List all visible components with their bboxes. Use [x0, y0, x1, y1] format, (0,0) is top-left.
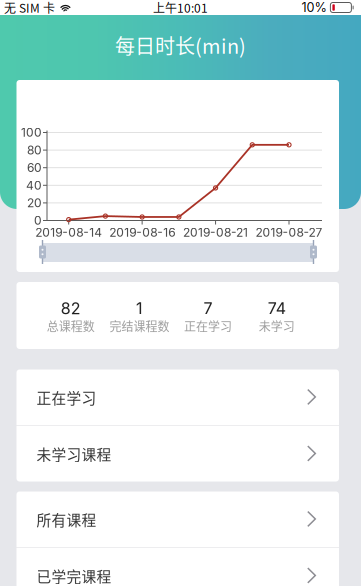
staticText: 正在学习: [36, 387, 96, 408]
staticText: 60: [27, 160, 42, 175]
staticText: 所有课程: [36, 509, 96, 530]
button[interactable]: 已学完课程: [16, 548, 339, 586]
staticText: 7: [204, 299, 213, 318]
staticText: 无 SIM 卡: [4, 0, 55, 16]
staticText: 100: [21, 125, 42, 140]
staticText: 0: [34, 213, 42, 228]
staticText: 2019-08-21: [183, 225, 248, 240]
staticText: 上午10:01: [153, 0, 208, 16]
staticText: 40: [26, 178, 42, 192]
staticText: 未学习: [259, 317, 295, 335]
staticText: 总课程数: [47, 317, 95, 335]
staticText: 74: [268, 299, 286, 318]
staticText: 每日时长(min): [115, 30, 246, 59]
staticText: 完结课程数: [109, 317, 169, 335]
button[interactable]: 未学习课程: [16, 426, 339, 481]
staticText: 10%: [301, 0, 326, 15]
staticText: 82: [61, 299, 81, 318]
staticText: 未学习课程: [36, 443, 111, 464]
staticText: 2019-08-14: [35, 225, 102, 240]
button[interactable]: 所有课程: [16, 491, 339, 547]
button[interactable]: 正在学习: [16, 369, 339, 425]
staticText: 1: [136, 299, 143, 318]
staticText: 2019-08-27: [255, 225, 322, 240]
staticText: 2019-08-16: [109, 225, 175, 240]
staticText: 正在学习: [184, 317, 232, 335]
staticText: 20: [27, 196, 42, 210]
staticText: 80: [27, 143, 42, 157]
staticText: 已学完课程: [36, 565, 111, 586]
